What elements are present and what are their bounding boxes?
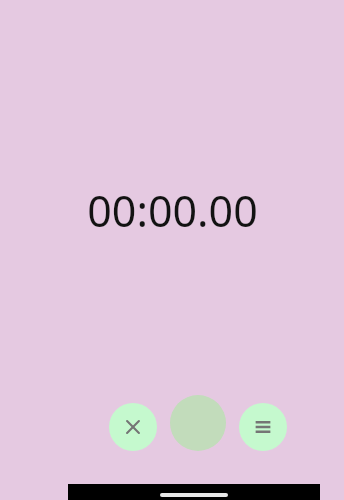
button[interactable]: Start bbox=[170, 395, 226, 451]
staticText: 00:00.00 bbox=[87, 181, 258, 240]
button[interactable]: Reset bbox=[109, 403, 157, 451]
button[interactable]: Laps bbox=[239, 403, 287, 451]
